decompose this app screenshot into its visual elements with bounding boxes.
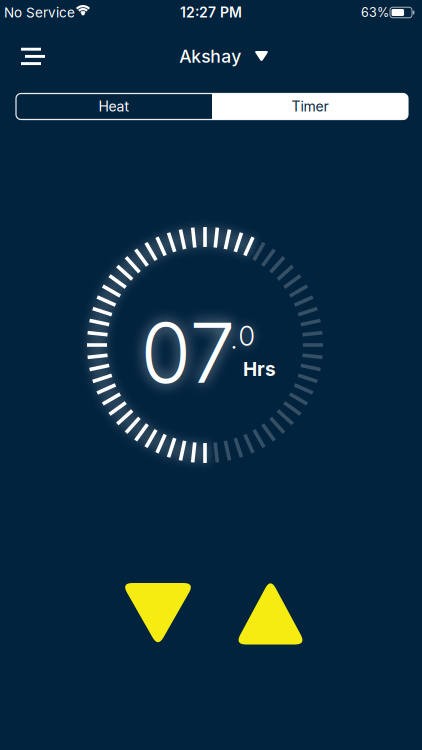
button[interactable]: Decrease timer <box>121 583 194 647</box>
staticText: Hrs <box>243 357 276 380</box>
button[interactable]: Increase timer <box>235 578 306 644</box>
button[interactable]: Timer <box>212 93 408 119</box>
staticText: . <box>230 323 237 355</box>
staticText: Heat <box>98 98 129 115</box>
staticText: Akshay <box>179 46 241 67</box>
staticText: No Service <box>4 4 75 21</box>
button[interactable]: Heat <box>16 93 212 119</box>
staticText: 12:27 PM <box>180 4 242 21</box>
button[interactable]: Menu <box>21 48 45 65</box>
staticText: Timer <box>291 98 328 115</box>
staticText: 07 <box>140 303 235 403</box>
button[interactable]: Akshay <box>179 46 269 67</box>
staticText: 0 <box>238 320 254 352</box>
staticText: 63% <box>361 5 389 20</box>
